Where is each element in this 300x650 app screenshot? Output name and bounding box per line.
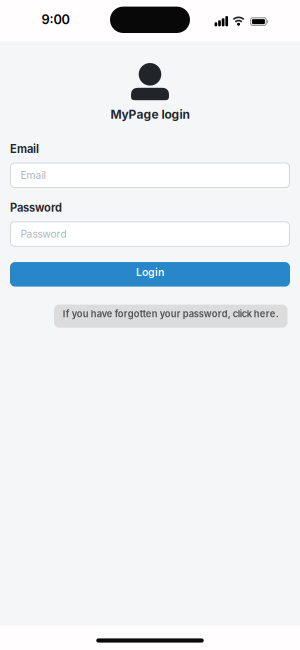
staticText: Password <box>20 228 66 240</box>
button[interactable]: If you have forgotten your password, cli… <box>54 305 287 328</box>
button[interactable]: Login <box>10 262 290 287</box>
staticText: Password <box>10 201 62 214</box>
staticText: Login <box>136 266 164 278</box>
staticText: MyPage login <box>110 107 189 122</box>
button[interactable]: Password text field <box>10 221 290 247</box>
staticText: Email <box>10 142 39 156</box>
staticText: Email <box>20 169 45 181</box>
button[interactable]: Email text field <box>10 162 290 188</box>
staticText: If you have forgotten your password, cli… <box>63 308 279 319</box>
staticText: 9:00 <box>41 12 69 27</box>
